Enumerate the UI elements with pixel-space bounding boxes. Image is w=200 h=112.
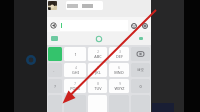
button[interactable]: More options bbox=[139, 20, 150, 31]
staticText: 1 bbox=[74, 52, 77, 57]
staticText: DEF bbox=[116, 54, 123, 59]
button[interactable]: 1 bbox=[64, 47, 86, 61]
button[interactable]: 8 bbox=[88, 79, 107, 93]
staticText: 清空 bbox=[137, 68, 144, 72]
staticText: 7 bbox=[74, 82, 76, 86]
staticText: 2 bbox=[97, 50, 99, 54]
button[interactable] bbox=[131, 47, 150, 61]
button[interactable]: Emoji bbox=[128, 20, 139, 31]
button[interactable]: Settings bbox=[139, 37, 143, 40]
button[interactable] bbox=[60, 20, 128, 31]
button[interactable] bbox=[48, 47, 62, 61]
button[interactable]: Keyboard bbox=[51, 36, 58, 41]
button[interactable]: 3 bbox=[109, 47, 129, 61]
staticText: TUV bbox=[94, 86, 102, 91]
button[interactable] bbox=[48, 1, 57, 10]
button[interactable]: Voice input bbox=[50, 22, 57, 29]
staticText: ? bbox=[54, 84, 56, 89]
staticText: 5 bbox=[97, 66, 99, 70]
staticText: PQRS bbox=[70, 86, 80, 91]
staticText: ABC bbox=[94, 54, 102, 59]
button[interactable]: 0 bbox=[131, 79, 150, 93]
staticText: 、 bbox=[53, 68, 57, 73]
button[interactable]: 4 bbox=[64, 63, 86, 77]
staticText: 4 bbox=[75, 66, 77, 70]
staticText: MNO bbox=[114, 70, 124, 75]
staticText: 0 bbox=[139, 84, 142, 89]
staticText: 3 bbox=[119, 50, 121, 54]
staticText: GHI bbox=[72, 70, 79, 75]
staticText: 9 bbox=[119, 82, 121, 86]
button[interactable]: 123 bbox=[64, 95, 86, 112]
button[interactable]: 2 bbox=[88, 47, 107, 61]
button[interactable]: 6 bbox=[109, 63, 129, 77]
button[interactable]: ? bbox=[48, 79, 62, 93]
staticText: JKL bbox=[95, 70, 101, 75]
staticText: 6 bbox=[118, 66, 120, 70]
staticText: WXYZ bbox=[114, 86, 125, 91]
button[interactable]: Voice bbox=[96, 36, 102, 42]
button[interactable] bbox=[66, 1, 103, 10]
staticText: 8 bbox=[97, 82, 99, 86]
button[interactable]: 5 bbox=[88, 63, 107, 77]
button[interactable]: 9 bbox=[109, 79, 129, 93]
button[interactable]: 7 bbox=[64, 79, 86, 93]
button[interactable]: 清空 bbox=[131, 63, 150, 77]
